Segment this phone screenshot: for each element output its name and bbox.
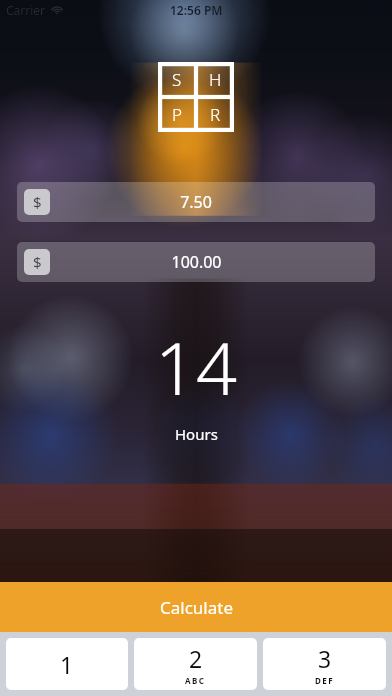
button[interactable]: 2 <box>134 638 257 690</box>
staticText: 2 <box>189 643 203 674</box>
staticText: 12:56 PM <box>170 2 223 18</box>
staticText: 14 <box>155 318 238 416</box>
staticText: Calculate <box>160 596 233 619</box>
staticText: S <box>172 68 182 91</box>
button[interactable]: Calculate <box>0 582 392 632</box>
staticText: P <box>172 103 183 126</box>
staticText: $ <box>33 192 42 212</box>
staticText: DEF <box>315 675 334 686</box>
staticText: 100.00 <box>171 251 222 273</box>
staticText: Hours <box>175 424 218 444</box>
button[interactable]: 1 <box>6 638 128 690</box>
staticText: ABC <box>185 675 206 686</box>
staticText: 7.50 <box>180 191 212 213</box>
button[interactable]: 100.00 <box>17 242 375 282</box>
staticText: 3 <box>318 643 332 674</box>
other: SHPR logo <box>158 62 234 132</box>
staticText: H <box>209 68 222 91</box>
staticText: $ <box>33 252 42 272</box>
button[interactable]: 7.50 <box>17 182 375 222</box>
staticText: 1 <box>60 649 74 680</box>
staticText: R <box>210 103 221 126</box>
staticText: Carrier <box>6 2 46 18</box>
button[interactable]: 3 <box>263 638 386 690</box>
